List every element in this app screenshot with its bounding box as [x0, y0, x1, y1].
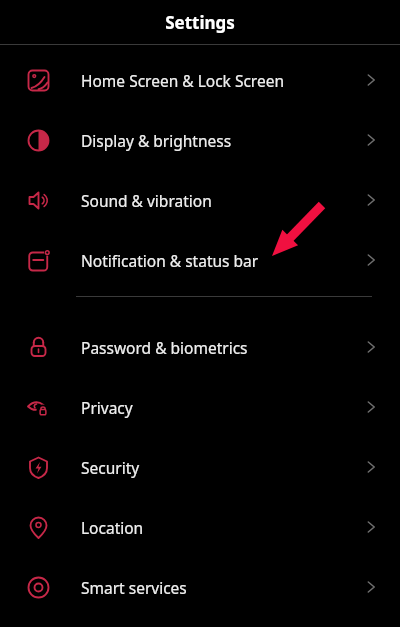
button[interactable]: Smart services [0, 557, 400, 617]
button[interactable]: Sound & vibration [0, 170, 400, 230]
staticText: Security [81, 457, 362, 478]
staticText: Home Screen & Lock Screen [81, 70, 362, 91]
button[interactable]: Notification & status bar [0, 230, 400, 290]
staticText: Password & biometrics [81, 337, 362, 358]
button[interactable]: Display & brightness [0, 110, 400, 170]
staticText: Location [81, 517, 362, 538]
staticText: Notification & status bar [81, 250, 362, 271]
button[interactable]: Security [0, 437, 400, 497]
button[interactable]: Home Screen & Lock Screen [0, 50, 400, 110]
button[interactable]: Location [0, 497, 400, 557]
button[interactable]: Privacy [0, 377, 400, 437]
button[interactable]: Password & biometrics [0, 317, 400, 377]
staticText: Privacy [81, 397, 362, 418]
staticText: Sound & vibration [81, 190, 362, 211]
staticText: Display & brightness [81, 130, 362, 151]
staticText: Smart services [81, 577, 362, 598]
staticText: Settings [165, 11, 235, 34]
